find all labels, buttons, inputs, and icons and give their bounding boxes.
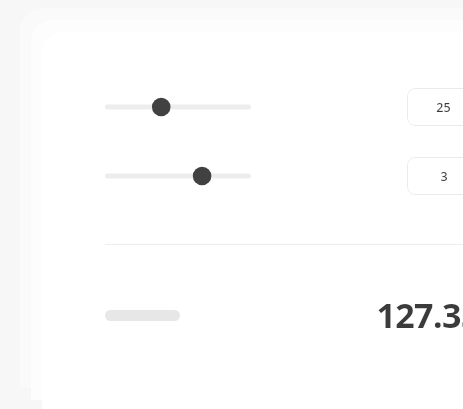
button[interactable]: Adjust value slider [105, 88, 251, 126]
staticText: 127.35 [376, 292, 463, 338]
staticText: 25 [436, 99, 451, 116]
button[interactable]: 127.35 [376, 292, 463, 338]
button[interactable]: Adjust value slider [105, 157, 251, 195]
button[interactable]: 3 [407, 157, 463, 195]
button[interactable]: 25 [407, 88, 463, 126]
staticText: 3 [440, 168, 448, 185]
